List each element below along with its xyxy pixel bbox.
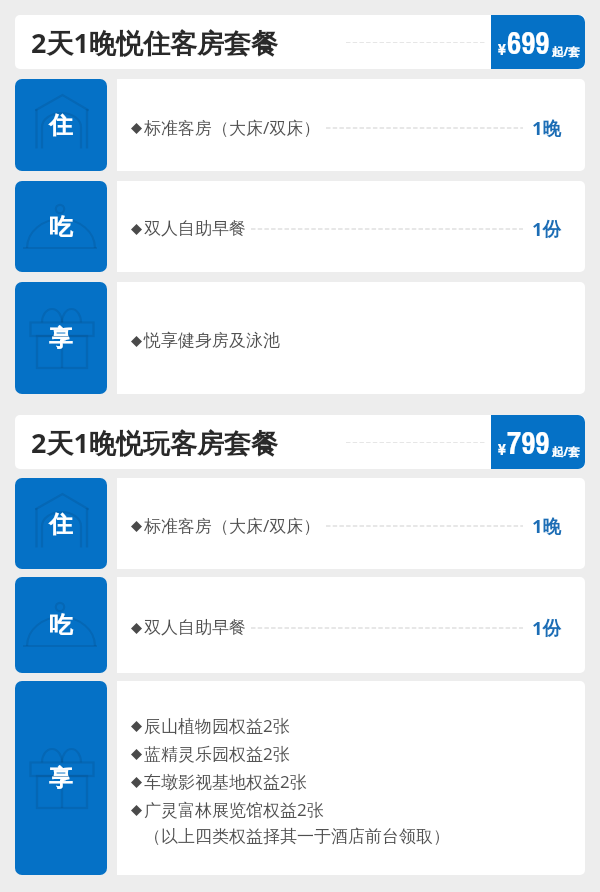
staticText: 广灵富林展览馆权益2张: [144, 798, 324, 821]
button[interactable]: 吃: [15, 181, 107, 272]
staticText: ¥: [498, 37, 506, 60]
staticText: 1晚: [532, 115, 562, 140]
staticText: 起/套: [552, 44, 580, 60]
staticText: 双人自助早餐: [144, 617, 246, 638]
button[interactable]: 2天1晚悦住客房套餐: [15, 15, 585, 69]
staticText: 标准客房（大床/双床）: [144, 116, 321, 139]
button[interactable]: 吃: [15, 577, 107, 673]
staticText: （以上四类权益择其一于酒店前台领取）: [144, 826, 450, 847]
staticText: 悦享健身房及泳池: [144, 330, 280, 351]
staticText: 住: [49, 509, 73, 539]
button[interactable]: 悦享健身房及泳池: [117, 282, 585, 394]
staticText: 双人自助早餐: [144, 218, 246, 239]
staticText: 蓝精灵乐园权益2张: [144, 742, 290, 765]
staticText: 1份: [532, 615, 562, 640]
button[interactable]: 双人自助早餐: [117, 181, 585, 272]
button[interactable]: 享: [15, 681, 107, 875]
button[interactable]: 享: [15, 282, 107, 394]
staticText: 799: [507, 422, 550, 464]
button[interactable]: 住: [15, 478, 107, 569]
button[interactable]: 2天1晚悦玩客房套餐: [15, 415, 585, 469]
staticText: 1份: [532, 216, 562, 241]
staticText: 标准客房（大床/双床）: [144, 514, 321, 537]
button[interactable]: 标准客房（大床/双床）: [117, 478, 585, 569]
staticText: 2天1晚悦住客房套餐: [31, 24, 278, 61]
staticText: 享: [49, 323, 73, 353]
staticText: 吃: [49, 212, 73, 242]
button[interactable]: ¥: [491, 415, 585, 469]
staticText: 车墩影视基地权益2张: [144, 770, 307, 793]
staticText: 辰山植物园权益2张: [144, 714, 290, 737]
button[interactable]: 辰山植物园权益2张: [117, 681, 585, 875]
button[interactable]: 住: [15, 79, 107, 171]
staticText: 享: [49, 763, 73, 793]
staticText: 699: [507, 22, 550, 64]
staticText: 2天1晚悦玩客房套餐: [31, 424, 278, 461]
staticText: 1晚: [532, 513, 562, 538]
staticText: 吃: [49, 610, 73, 640]
button[interactable]: ¥: [491, 15, 585, 69]
staticText: 住: [49, 110, 73, 140]
button[interactable]: 标准客房（大床/双床）: [117, 79, 585, 171]
staticText: 起/套: [552, 444, 580, 460]
staticText: ¥: [498, 437, 506, 460]
button[interactable]: 双人自助早餐: [117, 577, 585, 673]
